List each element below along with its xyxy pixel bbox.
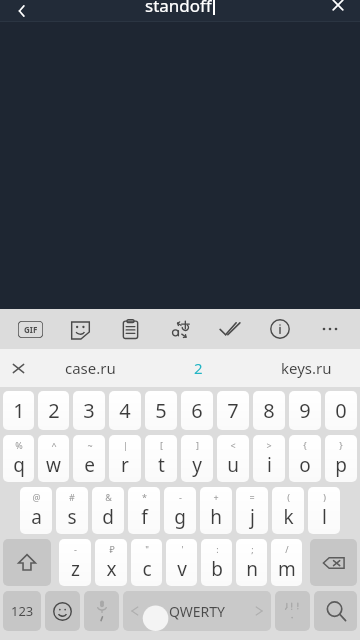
staticText: ': [181, 543, 184, 555]
staticText: l: [322, 504, 327, 530]
button[interactable]: Translate: [160, 309, 200, 349]
button[interactable]: More options: [310, 309, 350, 349]
staticText: <: [230, 439, 236, 451]
staticText: y: [192, 452, 202, 478]
button[interactable]: Settings info: [260, 309, 300, 349]
staticText: j: [250, 504, 255, 530]
button[interactable]: *: [128, 487, 160, 534]
staticText: t: [158, 452, 165, 478]
button[interactable]: 9: [289, 391, 321, 430]
button[interactable]: /: [271, 539, 302, 586]
button[interactable]: (: [272, 487, 304, 534]
button[interactable]: <: [217, 435, 249, 482]
button[interactable]: 8: [253, 391, 285, 430]
staticText: r: [121, 452, 129, 478]
staticText: 123: [11, 602, 34, 620]
button[interactable]: ': [166, 539, 197, 586]
button[interactable]: %: [3, 435, 34, 482]
button[interactable]: 2: [38, 391, 69, 430]
button[interactable]: +: [200, 487, 232, 534]
staticText: a: [31, 504, 42, 530]
staticText: [: [160, 439, 163, 451]
button[interactable]: Spell check: [210, 309, 250, 349]
button[interactable]: Shift: [3, 539, 51, 586]
staticText: z: [71, 556, 80, 582]
staticText: #: [69, 491, 75, 503]
staticText: {: [303, 439, 307, 451]
staticText: ;: [251, 543, 254, 555]
staticText: s: [67, 504, 77, 530]
staticText: b: [211, 556, 223, 582]
staticText: ^: [51, 439, 57, 451]
button[interactable]: -: [59, 539, 91, 586]
staticText: ": [145, 543, 149, 555]
button[interactable]: GIF: [10, 309, 50, 349]
staticText: k: [283, 504, 294, 530]
button[interactable]: QWERTY: [123, 591, 271, 631]
button[interactable]: Close: [316, 0, 360, 22]
staticText: u: [227, 452, 239, 478]
staticText: f: [141, 504, 148, 530]
button[interactable]: keys.ru: [252, 349, 360, 387]
button[interactable]: ]: [181, 435, 213, 482]
button[interactable]: case.ru: [36, 349, 144, 387]
staticText: i: [267, 452, 272, 478]
button[interactable]: 2: [144, 349, 252, 387]
button[interactable]: &: [92, 487, 124, 534]
button[interactable]: Search: [314, 591, 357, 631]
button[interactable]: Back: [0, 0, 44, 22]
button[interactable]: 4: [109, 391, 141, 430]
button[interactable]: ^: [38, 435, 69, 482]
staticText: |: [123, 439, 128, 451]
button[interactable]: 1: [3, 391, 34, 430]
staticText: =: [249, 491, 255, 503]
button[interactable]: ": [131, 539, 162, 586]
button[interactable]: #: [56, 487, 88, 534]
staticText: &: [105, 491, 112, 503]
button[interactable]: :: [201, 539, 232, 586]
button[interactable]: 0: [325, 391, 357, 430]
staticText: ): [323, 491, 326, 503]
staticText: 6: [191, 397, 203, 424]
staticText: :: [216, 543, 219, 555]
staticText: -: [74, 543, 77, 555]
button[interactable]: 3: [73, 391, 105, 430]
button[interactable]: Punctuation: [275, 591, 310, 631]
button[interactable]: ~: [73, 435, 105, 482]
staticText: keys.ru: [281, 358, 332, 378]
button[interactable]: Clipboard: [110, 309, 150, 349]
staticText: h: [210, 504, 222, 530]
staticText: @: [32, 491, 41, 503]
button[interactable]: =: [236, 487, 268, 534]
button[interactable]: Close suggestions: [0, 349, 36, 387]
button[interactable]: 5: [145, 391, 177, 430]
button[interactable]: @: [20, 487, 52, 534]
staticText: p: [335, 452, 347, 478]
button[interactable]: 6: [181, 391, 213, 430]
staticText: ]: [196, 439, 199, 451]
button[interactable]: Voice input: [84, 591, 119, 631]
staticText: +: [213, 491, 219, 503]
button[interactable]: >: [253, 435, 285, 482]
staticText: w: [46, 452, 61, 478]
staticText: 5: [155, 397, 167, 424]
button[interactable]: |: [109, 435, 141, 482]
staticText: /: [285, 543, 289, 555]
staticText: QWERTY: [169, 602, 226, 621]
button[interactable]: ;: [236, 539, 267, 586]
button[interactable]: 7: [217, 391, 249, 430]
staticText: ~: [87, 439, 93, 451]
button[interactable]: Numbers and symbols: [3, 591, 41, 631]
button[interactable]: -: [164, 487, 196, 534]
button[interactable]: [: [145, 435, 177, 482]
button[interactable]: }: [325, 435, 357, 482]
button[interactable]: ₽: [95, 539, 127, 586]
staticText: -: [179, 491, 182, 503]
button[interactable]: Emoji: [45, 591, 80, 631]
button[interactable]: Backspace: [310, 539, 357, 586]
staticText: 9: [299, 397, 311, 424]
button[interactable]: {: [289, 435, 321, 482]
button[interactable]: ): [308, 487, 340, 534]
button[interactable]: Stickers: [60, 309, 100, 349]
staticText: m: [278, 556, 296, 582]
